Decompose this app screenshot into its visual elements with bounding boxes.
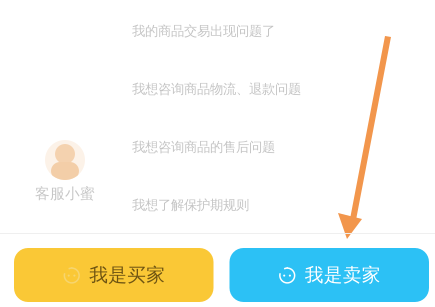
staticText: 我想咨询商品的售后问题: [132, 139, 275, 155]
button[interactable]: 我是卖家: [229, 248, 429, 302]
staticText: 我是买家: [89, 263, 165, 286]
staticText: 我想咨询商品物流、退款问题: [132, 81, 301, 97]
button[interactable]: 我想了解保护期规则: [132, 197, 249, 213]
staticText: 我想了解保护期规则: [132, 197, 249, 213]
button[interactable]: 我是买家: [14, 248, 213, 302]
staticText: 我是卖家: [305, 263, 381, 286]
button[interactable]: 我想咨询商品物流、退款问题: [132, 81, 301, 97]
button[interactable]: 我想咨询商品的售后问题: [132, 139, 275, 155]
staticText: 我的商品交易出现问题了: [132, 23, 275, 39]
button[interactable]: 我的商品交易出现问题了: [132, 23, 275, 39]
staticText: 客服小蜜: [35, 184, 95, 202]
